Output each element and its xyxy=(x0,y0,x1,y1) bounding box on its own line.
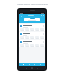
button[interactable] xyxy=(25,36,29,39)
button[interactable] xyxy=(25,28,29,31)
button[interactable] xyxy=(24,18,40,21)
button[interactable] xyxy=(30,36,34,39)
button[interactable] xyxy=(40,36,44,39)
button[interactable] xyxy=(19,32,45,36)
button[interactable]: Menu xyxy=(20,15,22,17)
button[interactable] xyxy=(35,36,39,39)
button[interactable] xyxy=(40,28,44,31)
button[interactable] xyxy=(20,28,24,31)
button[interactable] xyxy=(30,28,34,31)
button[interactable] xyxy=(20,44,24,47)
button[interactable] xyxy=(20,36,24,39)
button[interactable] xyxy=(35,44,39,47)
staticText: Make every day productive xyxy=(17,2,48,5)
button[interactable] xyxy=(30,44,34,47)
button[interactable] xyxy=(40,44,44,47)
button[interactable] xyxy=(35,28,39,31)
button[interactable] xyxy=(19,24,45,28)
button[interactable] xyxy=(25,44,29,47)
button[interactable] xyxy=(19,40,45,44)
